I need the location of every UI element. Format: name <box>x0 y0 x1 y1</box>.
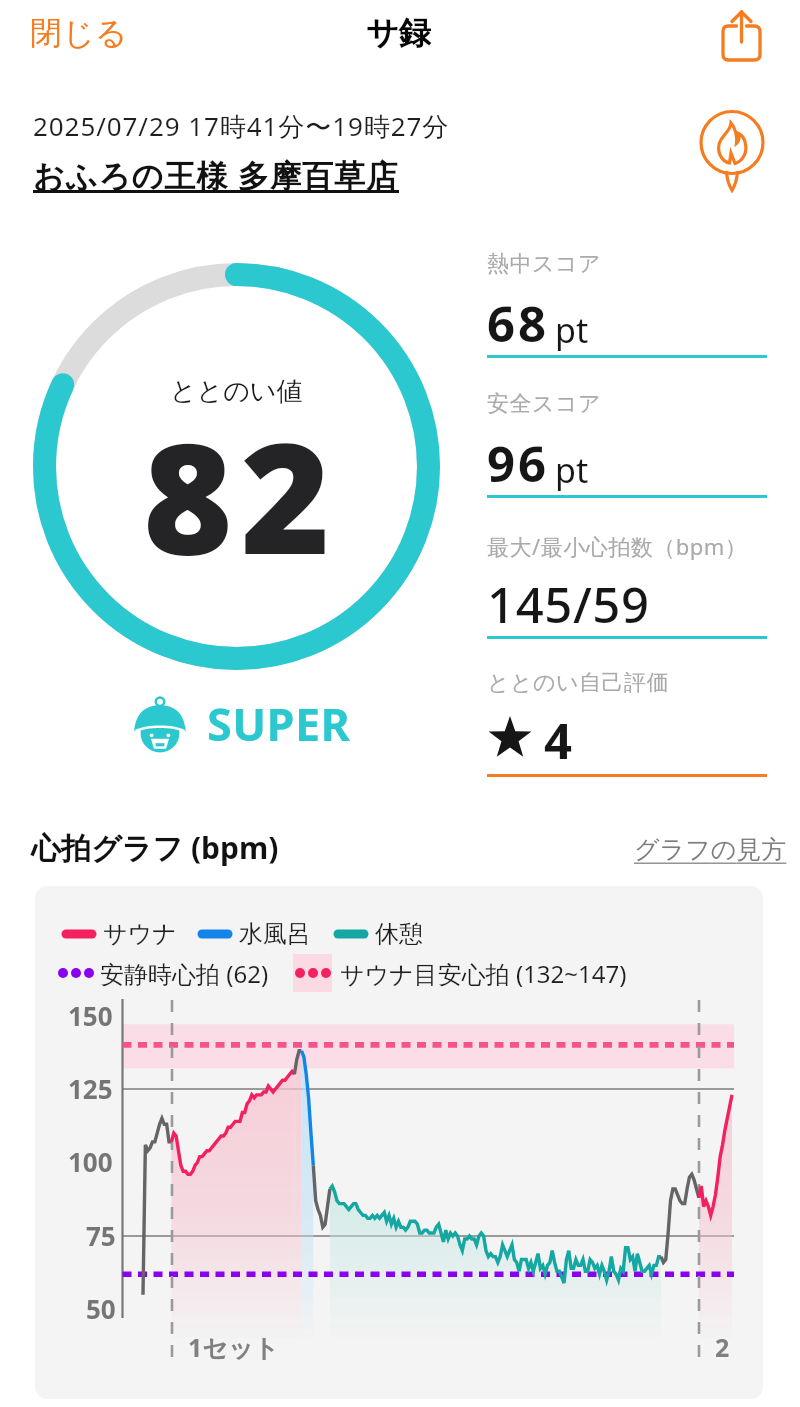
staticText: 熱中スコア <box>487 250 602 278</box>
staticText: 82 <box>143 390 339 598</box>
staticText: 96 <box>487 430 550 497</box>
staticText: 4 <box>544 707 573 774</box>
button[interactable]: Share <box>715 2 769 56</box>
staticText: 100 <box>68 1144 113 1179</box>
staticText: pt <box>555 307 589 353</box>
staticText: SUPER <box>207 693 351 754</box>
staticText: サウナ目安心拍 (132~147) <box>340 957 627 990</box>
staticText: 145/59 <box>487 571 650 638</box>
staticText: ととのい自己評価 <box>487 669 670 697</box>
staticText: 安全スコア <box>487 390 602 418</box>
staticText: 休憩 <box>375 919 423 949</box>
staticText: サウナ <box>103 919 177 949</box>
button[interactable]: おふろの王様 多摩百草店 <box>33 154 399 196</box>
staticText: 50 <box>86 1291 116 1326</box>
staticText: pt <box>555 447 589 493</box>
staticText: 2 <box>715 1330 730 1364</box>
staticText: グラフの見方 <box>634 834 787 865</box>
button[interactable]: 閉じる <box>18 7 140 59</box>
staticText: 1セット <box>188 1330 280 1364</box>
staticText: 最大/最小心拍数（bpm） <box>487 531 748 561</box>
staticText: 水風呂 <box>239 919 311 949</box>
staticText: 68 <box>487 290 550 357</box>
staticText: 125 <box>68 1071 113 1106</box>
staticText: 2025/07/29 17時41分〜19時27分 <box>33 108 450 144</box>
button[interactable]: グラフの見方 <box>634 834 787 865</box>
staticText: ととのい値 <box>170 375 303 408</box>
staticText: おふろの王様 多摩百草店 <box>33 154 399 196</box>
staticText: サ録 <box>366 13 431 53</box>
staticText: 75 <box>86 1218 116 1253</box>
staticText: 150 <box>68 998 113 1033</box>
staticText: 安静時心拍 (62) <box>100 957 269 990</box>
staticText: 閉じる <box>30 13 128 53</box>
staticText: 心拍グラフ (bpm) <box>31 827 279 868</box>
button[interactable]: Sauna heat badge <box>697 107 767 177</box>
